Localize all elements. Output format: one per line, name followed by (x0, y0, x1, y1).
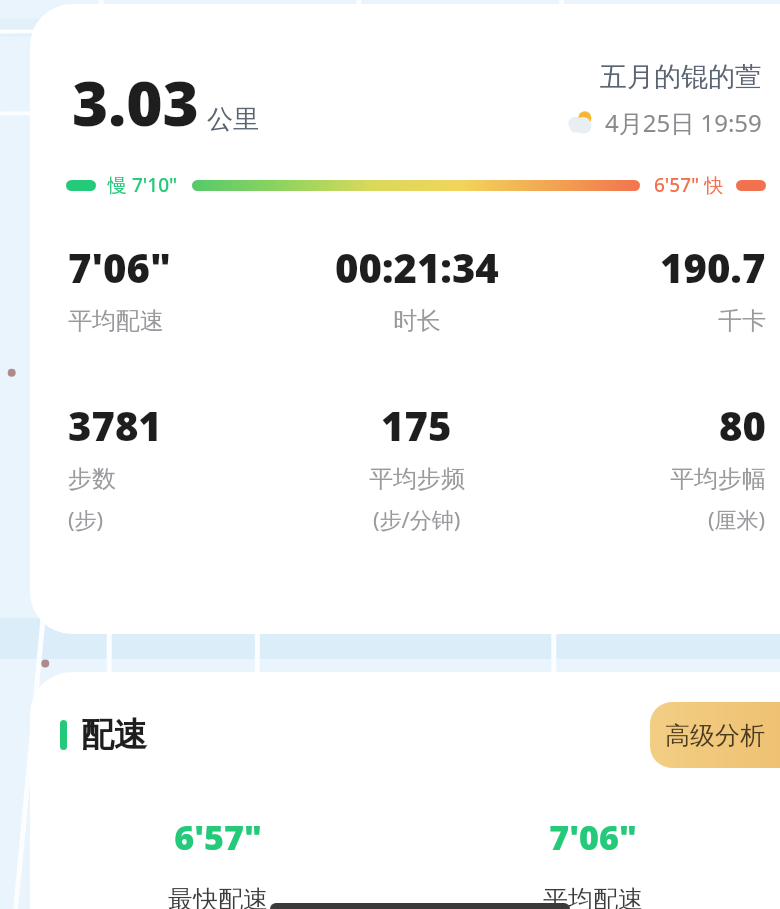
staticText: 190.7 (660, 240, 766, 294)
staticText: 7'06" (549, 814, 637, 860)
button[interactable]: 7'06" (405, 814, 780, 909)
staticText: (厘米) (708, 504, 766, 534)
button[interactable]: 6'57" (30, 814, 405, 909)
staticText: 00:21:34 (335, 240, 499, 294)
staticText: 慢 7'10" (108, 172, 178, 198)
button[interactable]: 00:21:34 (300, 240, 533, 336)
button[interactable]: 7'06" (68, 240, 300, 336)
staticText: 7'06" (68, 240, 171, 294)
staticText: 6'57" (174, 814, 262, 860)
staticText: 千卡 (718, 306, 766, 336)
button[interactable]: 175 (300, 398, 533, 534)
staticText: 175 (381, 398, 452, 452)
staticText: 平均步幅 (670, 464, 766, 494)
staticText: 平均步频 (369, 464, 465, 494)
staticText: 4月25日 19:59 (605, 106, 762, 139)
staticText: 3.03 (72, 60, 199, 144)
staticText: 最快配速 (168, 884, 268, 909)
button[interactable]: 190.7 (533, 240, 766, 336)
staticText: 步数 (68, 464, 116, 494)
staticText: (步) (68, 504, 104, 534)
staticText: 平均配速 (68, 306, 164, 336)
staticText: 3781 (68, 398, 162, 452)
staticText: (步/分钟) (373, 504, 461, 534)
staticText: 时长 (393, 306, 441, 336)
staticText: 高级分析 (665, 720, 765, 751)
staticText: 平均配速 (543, 884, 643, 909)
button[interactable]: 高级分析 (650, 702, 780, 768)
staticText: 公里 (207, 103, 259, 136)
staticText: 配速 (81, 714, 147, 756)
staticText: 6'57" 快 (654, 172, 724, 198)
staticText: 80 (719, 398, 766, 452)
button[interactable]: 80 (533, 398, 766, 534)
staticText: 五月的锟的萱 (600, 60, 762, 94)
button[interactable]: 3781 (68, 398, 300, 534)
